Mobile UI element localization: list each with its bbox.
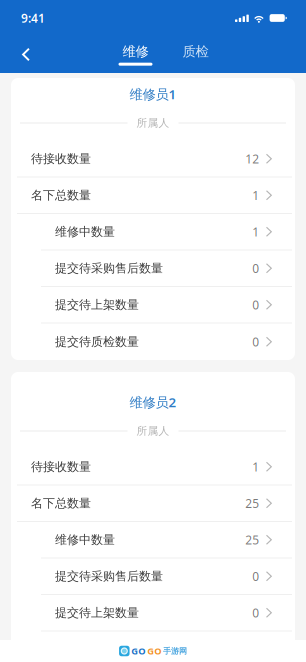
staticText: 提交待上架数量 [55,605,139,620]
button[interactable]: 提交待上架数量 [11,595,295,630]
staticText: 1 [252,187,259,203]
staticText: 25 [245,532,259,548]
staticText: 所属人 [136,424,169,437]
staticText: 0 [252,568,259,584]
button[interactable]: 维修中数量 [11,522,295,557]
button[interactable]: 提交待采购售后数量 [11,250,295,286]
staticText: 质检 [182,43,208,60]
button[interactable]: 提交待质检数量 [11,631,295,662]
staticText: 名下总数量 [31,188,91,203]
button[interactable]: 提交待质检数量 [11,323,295,360]
staticText: 待接收数量 [31,151,91,166]
staticText: 提交待上架数量 [55,297,139,312]
staticText: 12 [245,151,259,167]
staticText: 0 [252,297,259,313]
staticText: 25 [245,495,259,511]
button[interactable]: 质检 [170,36,220,73]
staticText: 手游网 [163,646,187,656]
button[interactable]: 提交待上架数量 [11,287,295,322]
button[interactable]: Back [0,36,45,73]
staticText: 维修中数量 [55,224,115,239]
staticText: 提交待质检数量 [55,334,139,349]
staticText: 提交待采购售后数量 [55,261,163,276]
button[interactable]: 名下总数量 [11,485,295,521]
staticText: 1 [252,459,259,475]
staticText: 提交待采购售后数量 [55,569,163,584]
staticText: 0 [252,334,259,350]
staticText: 维修 [122,43,148,60]
staticText: GO [147,645,161,657]
button[interactable]: 维修中数量 [11,214,295,249]
staticText: 提交待质检数量 [55,642,139,657]
button[interactable]: 待接收数量 [11,141,295,176]
staticText: 0 [252,605,259,621]
staticText: 名下总数量 [31,496,91,511]
staticText: 待接收数量 [31,459,91,474]
button[interactable]: 提交待采购售后数量 [11,558,295,594]
staticText: GO [131,645,145,657]
staticText: 9:41 [21,10,45,26]
staticText: 维修中数量 [55,532,115,547]
staticText: 0 [252,260,259,276]
button[interactable]: 名下总数量 [11,177,295,213]
staticText: 1 [252,224,259,240]
staticText: 维修员2 [129,393,176,411]
button[interactable]: 待接收数量 [11,449,295,484]
staticText: 所属人 [136,116,169,129]
button[interactable]: 维修 [110,36,160,73]
staticText: 维修员1 [129,85,176,103]
